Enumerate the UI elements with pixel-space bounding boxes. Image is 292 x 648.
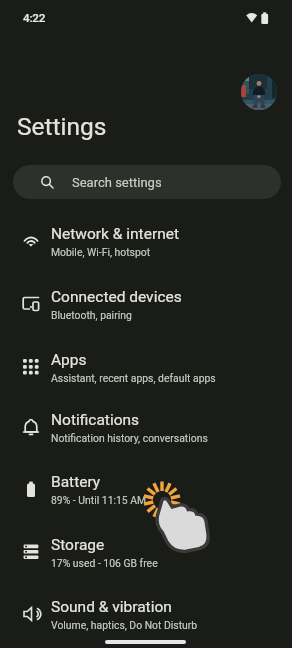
button[interactable]: Apps [0,336,292,398]
button[interactable] [241,74,277,110]
staticText: Settings [17,112,107,141]
staticText: 89% - Until 11:15 AM [51,494,147,506]
staticText: Storage [51,536,105,554]
button[interactable]: Network & internet [0,210,292,272]
button[interactable]: Sound & vibration [0,583,292,645]
staticText: Bluetooth, pairing [51,309,132,321]
staticText: Assistant, recent apps, default apps [51,372,216,384]
staticText: Apps [51,351,87,369]
button[interactable]: Search settings [13,165,281,199]
staticText: Volume, haptics, Do Not Disturb [51,619,198,631]
staticText: 17% used - 106 GB free [51,557,158,569]
staticText: Notification history, conversations [51,432,208,444]
staticText: Mobile, Wi-Fi, hotspot [51,246,151,258]
staticText: Battery [51,473,101,491]
staticText: Network & internet [51,225,179,243]
button[interactable]: Connected devices [0,273,292,335]
button[interactable]: Notifications [0,396,292,458]
staticText: Notifications [51,411,140,429]
staticText: Connected devices [51,288,182,306]
staticText: Search settings [72,175,162,190]
staticText: 4:22 [23,11,46,25]
staticText: Sound & vibration [51,598,172,616]
button[interactable]: Storage [0,521,292,583]
button[interactable]: Battery [0,458,292,520]
